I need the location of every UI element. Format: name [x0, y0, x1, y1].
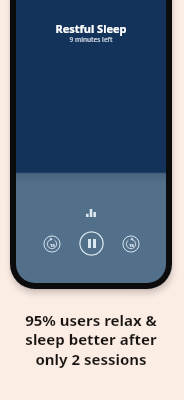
- button[interactable]: Replay 15 seconds: [43, 235, 61, 253]
- button[interactable]: Pause: [79, 231, 104, 256]
- staticText: Restful Sleep: [16, 21, 166, 36]
- button[interactable]: Forward 15 seconds: [122, 235, 140, 253]
- staticText: 15: [129, 243, 134, 248]
- staticText: 9 minutes left: [16, 35, 166, 44]
- staticText: 95% users relax & sleep better after onl…: [0, 310, 183, 370]
- staticText: 15: [50, 243, 55, 248]
